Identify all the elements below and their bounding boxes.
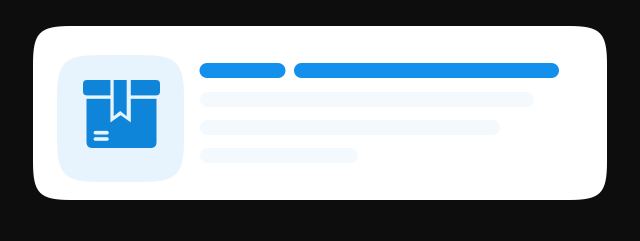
button[interactable]: Package details, loading — [33, 26, 607, 200]
